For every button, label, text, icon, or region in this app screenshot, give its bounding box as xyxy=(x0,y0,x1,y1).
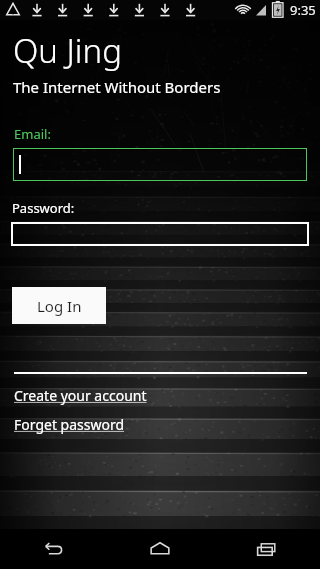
button[interactable]: Log In xyxy=(12,287,106,324)
staticText: Create your account xyxy=(14,386,147,405)
button[interactable]: Recent apps xyxy=(239,529,295,569)
button[interactable] xyxy=(11,222,309,246)
button[interactable]: Back xyxy=(25,529,81,569)
staticText: Password: xyxy=(12,199,75,217)
staticText: Log In xyxy=(37,296,82,316)
staticText: The Internet Without Borders xyxy=(13,77,221,97)
staticText: Qu Jing xyxy=(13,28,122,73)
button[interactable]: Home xyxy=(132,529,188,569)
staticText: Forget password xyxy=(14,415,125,434)
staticText: 9:35 xyxy=(290,1,316,19)
button[interactable]: Create your account xyxy=(14,386,147,405)
button[interactable]: Forget password xyxy=(14,415,125,434)
button[interactable] xyxy=(13,148,307,181)
staticText: Email: xyxy=(14,125,51,143)
